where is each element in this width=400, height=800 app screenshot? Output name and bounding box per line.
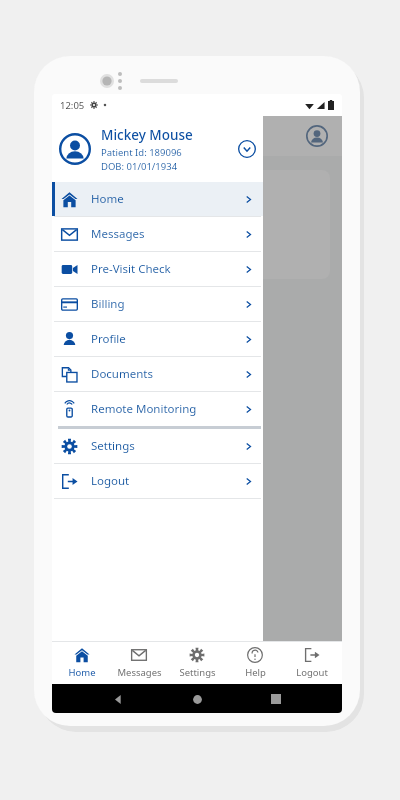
button[interactable]: Recents bbox=[263, 686, 289, 712]
button[interactable]: Documents bbox=[52, 357, 263, 391]
staticText: 12:05 bbox=[60, 99, 85, 112]
staticText: Pre-Visit Check bbox=[91, 261, 171, 277]
staticText: You have no upcoming appointments. bbox=[78, 237, 186, 265]
staticText: Documents bbox=[91, 366, 153, 382]
button[interactable]: Expand patient details bbox=[238, 140, 256, 158]
staticText: Home bbox=[91, 191, 124, 207]
button[interactable]: Home bbox=[184, 686, 210, 712]
button[interactable]: Profile bbox=[306, 125, 328, 147]
staticText: Remote Monitoring bbox=[91, 401, 197, 417]
button[interactable]: Home bbox=[54, 642, 110, 684]
button[interactable]: Help bbox=[227, 642, 283, 684]
staticText: Profile bbox=[91, 331, 126, 347]
staticText: Messages bbox=[117, 666, 162, 679]
staticText: Settings bbox=[179, 666, 216, 679]
staticText: Messages bbox=[91, 226, 145, 242]
button[interactable]: Billing bbox=[52, 287, 263, 321]
staticText: Logout bbox=[91, 473, 130, 489]
button[interactable]: Back bbox=[105, 686, 131, 712]
button[interactable]: Profile bbox=[52, 322, 263, 356]
button[interactable]: Logout bbox=[52, 464, 263, 498]
button[interactable]: Settings bbox=[52, 429, 263, 463]
staticText: Home bbox=[68, 666, 96, 679]
staticText: Appointments bbox=[78, 214, 171, 232]
staticText: Mickey Mouse bbox=[101, 126, 193, 144]
button[interactable]: Messages bbox=[52, 217, 263, 251]
button[interactable]: Pre-Visit Check bbox=[52, 252, 263, 286]
button[interactable]: Settings bbox=[169, 642, 225, 684]
staticText: Settings bbox=[91, 438, 135, 454]
button[interactable]: Mickey Mouse bbox=[59, 116, 256, 182]
button[interactable]: Remote Monitoring bbox=[52, 392, 263, 426]
staticText: Billing bbox=[91, 296, 125, 312]
staticText: Help bbox=[245, 666, 266, 679]
staticText: Logout bbox=[296, 666, 328, 679]
button[interactable]: Logout bbox=[284, 642, 340, 684]
staticText: DOB: 01/01/1934 bbox=[101, 160, 178, 173]
staticText: Patient Id: 189096 bbox=[101, 146, 182, 159]
button[interactable]: Home bbox=[52, 182, 263, 216]
button[interactable]: Messages bbox=[111, 642, 167, 684]
